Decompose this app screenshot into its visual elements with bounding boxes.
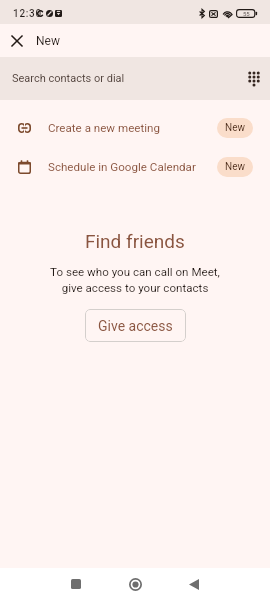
staticText: 12:30 xyxy=(13,8,42,20)
button[interactable]: Recents xyxy=(58,568,94,600)
staticText: Schedule in Google Calendar xyxy=(48,160,196,174)
staticText: Search contacts or dial xyxy=(12,72,125,85)
button[interactable]: Create a new meeting xyxy=(0,108,270,147)
staticText: To see who you can call on Meet, give ac… xyxy=(50,265,220,294)
staticText: New xyxy=(225,161,245,173)
button[interactable]: Give access xyxy=(85,309,186,342)
button[interactable]: Search contacts or dial xyxy=(0,57,270,100)
staticText: Give access xyxy=(98,318,173,334)
staticText: New xyxy=(36,34,60,48)
staticText: New xyxy=(225,122,245,134)
staticText: Find friends xyxy=(85,230,185,252)
button[interactable]: Schedule in Google Calendar xyxy=(0,147,270,186)
button[interactable]: Home xyxy=(117,568,153,600)
staticText: Create a new meeting xyxy=(48,121,160,135)
button[interactable]: Close xyxy=(0,24,33,57)
button[interactable]: Dialpad xyxy=(236,61,270,97)
button[interactable]: Back xyxy=(176,568,212,600)
staticText: 55 xyxy=(243,10,250,17)
